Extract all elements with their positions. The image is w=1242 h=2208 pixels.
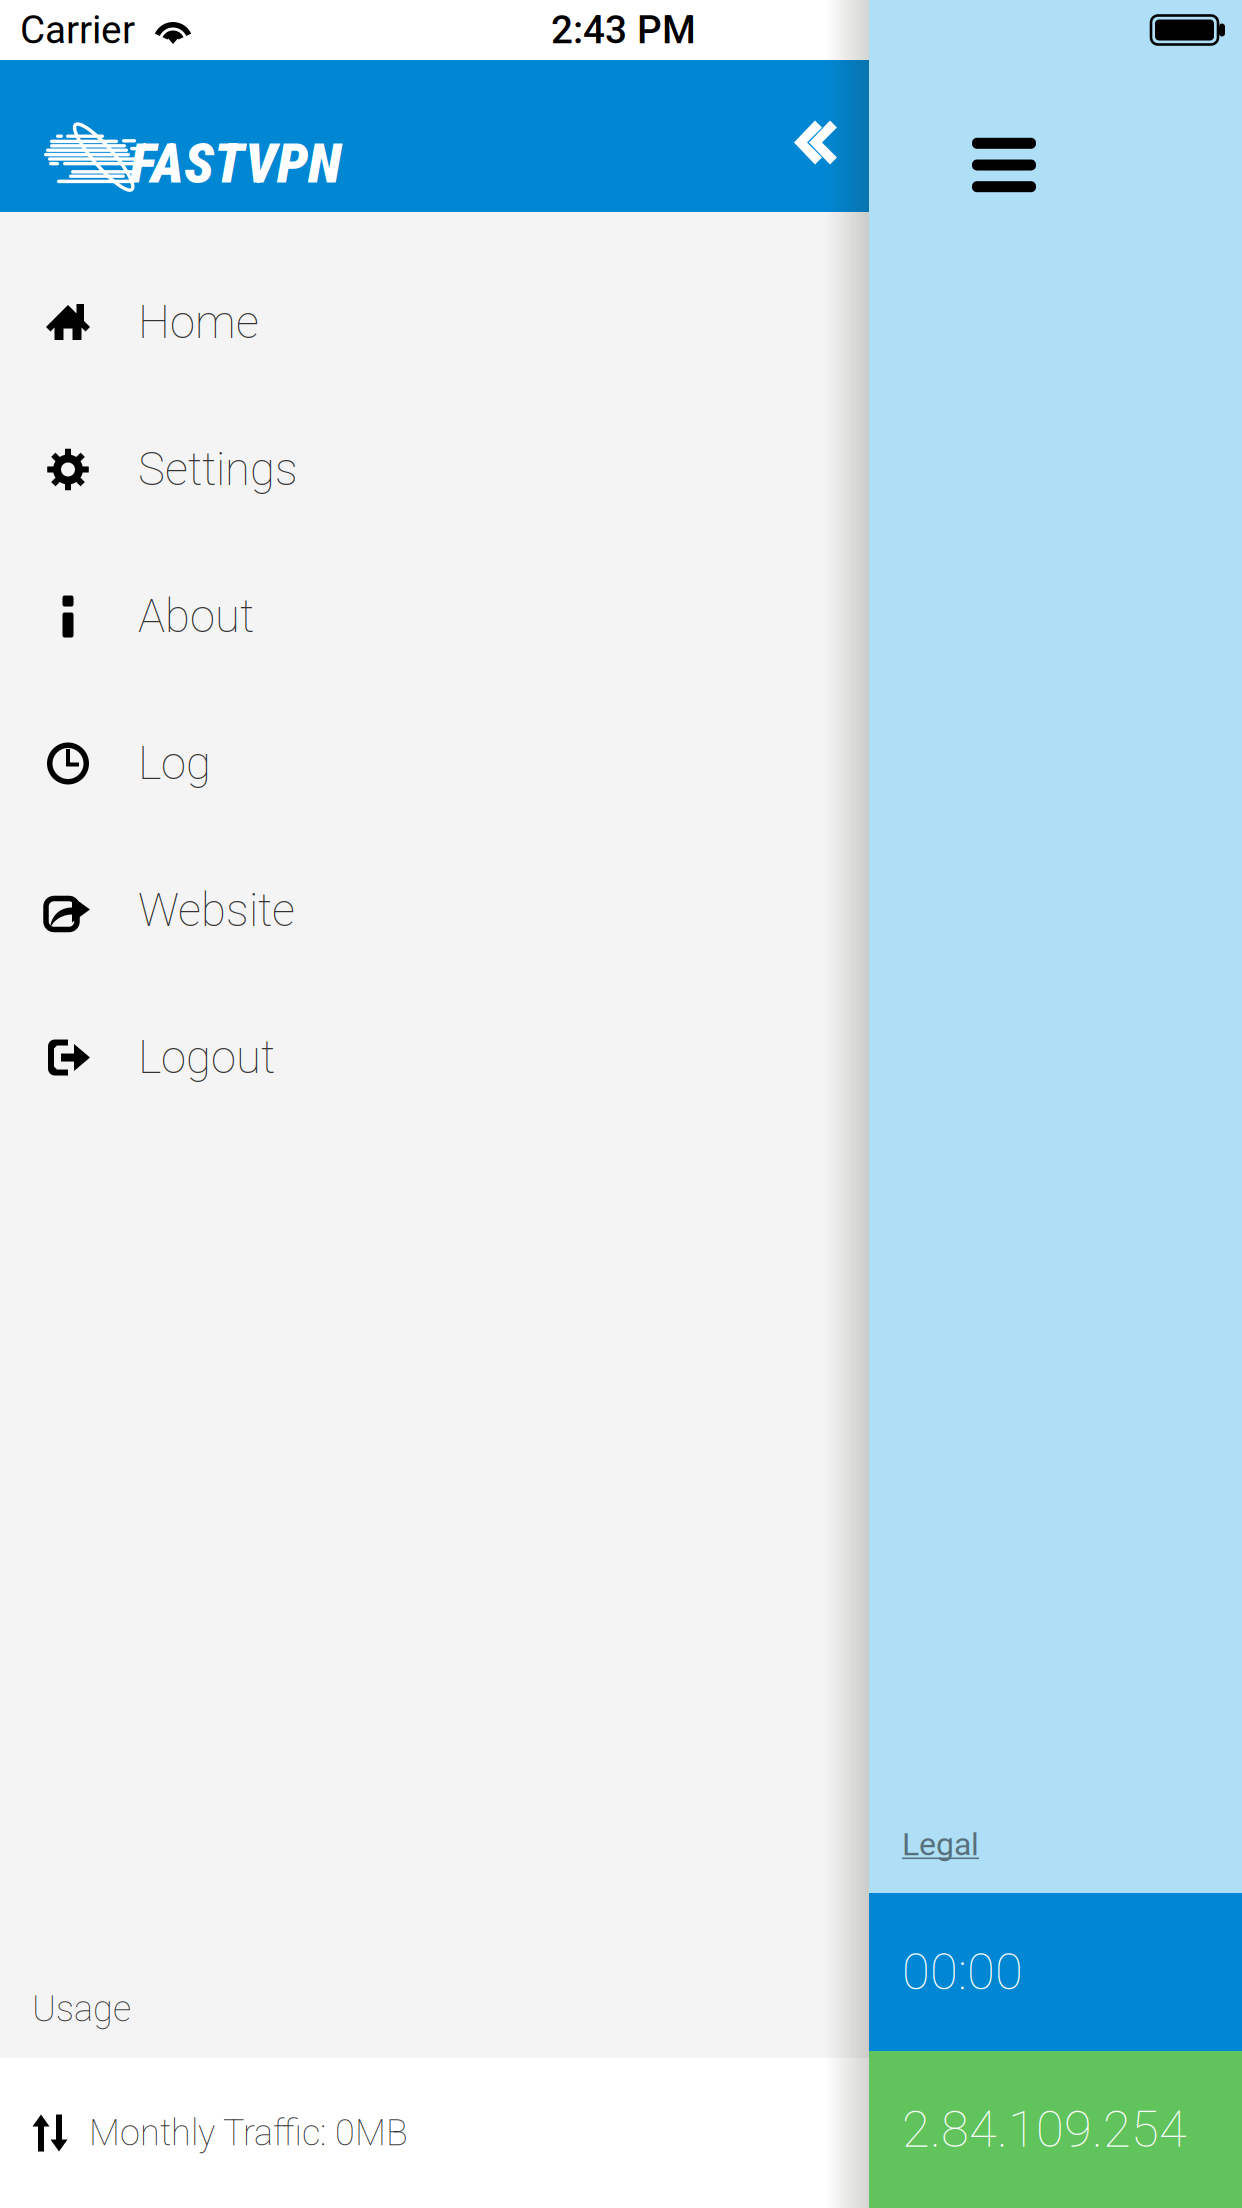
- staticText: Log: [138, 737, 211, 790]
- button[interactable]: Website: [0, 837, 869, 984]
- button[interactable]: Menu: [939, 31, 1069, 241]
- staticText: 2.84.109.254: [902, 2100, 1187, 2159]
- button[interactable]: Logout: [0, 984, 869, 1131]
- staticText: Carrier: [20, 7, 135, 53]
- staticText: Website: [138, 884, 295, 937]
- button[interactable]: Close menu: [766, 94, 862, 190]
- staticText: About: [138, 590, 254, 643]
- staticText: Usage: [32, 1988, 131, 2030]
- button[interactable]: About: [0, 543, 869, 690]
- staticText: 00:00: [902, 1942, 1023, 2002]
- button[interactable]: Legal: [869, 1825, 1242, 1893]
- button[interactable]: Log: [0, 690, 869, 837]
- staticText: Home: [138, 296, 259, 349]
- staticText: Legal: [902, 1825, 979, 1863]
- staticText: FASTVPN: [130, 130, 341, 196]
- staticText: Settings: [138, 443, 298, 496]
- staticText: Logout: [138, 1031, 275, 1084]
- staticText: Monthly Traffic: 0MB: [89, 2112, 408, 2154]
- staticText: 2:43 PM: [551, 7, 696, 53]
- button[interactable]: Monthly Traffic: 0MB: [0, 2058, 869, 2208]
- button[interactable]: Home: [0, 249, 869, 396]
- button[interactable]: Settings: [0, 396, 869, 543]
